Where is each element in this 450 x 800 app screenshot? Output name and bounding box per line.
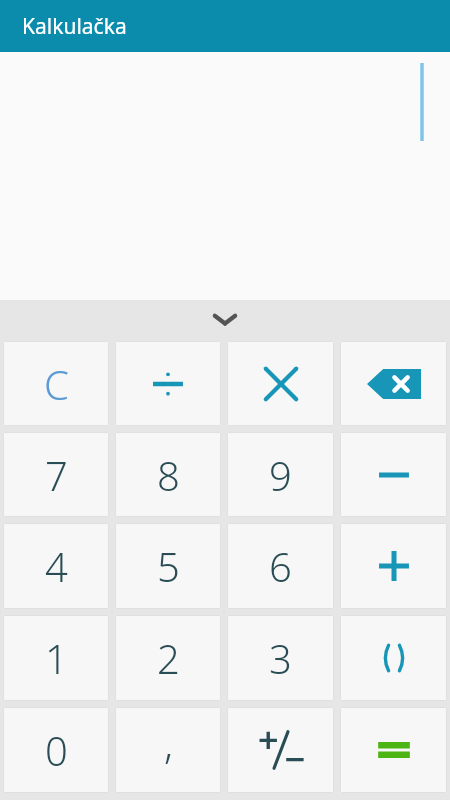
- button[interactable]: 1: [3, 615, 109, 701]
- button[interactable]: 4: [3, 523, 109, 609]
- staticText: 0: [45, 723, 68, 777]
- staticText: 5: [157, 539, 180, 593]
- button[interactable]: 7: [3, 432, 109, 517]
- button[interactable]: 9: [227, 432, 334, 517]
- button[interactable]: 5: [115, 523, 221, 609]
- button[interactable]: Divide: [115, 341, 221, 426]
- staticText: Kalkulačka: [22, 12, 127, 41]
- button[interactable]: Backspace: [340, 341, 447, 426]
- staticText: 6: [269, 539, 292, 593]
- staticText: 8: [157, 448, 180, 502]
- staticText: 4: [45, 539, 68, 593]
- staticText: C: [44, 357, 69, 411]
- button[interactable]: Multiply: [227, 341, 334, 426]
- button[interactable]: 0: [3, 707, 109, 793]
- staticText: 9: [269, 448, 292, 502]
- button[interactable]: Minus: [340, 432, 447, 517]
- staticText: 2: [157, 631, 180, 685]
- staticText: ,: [164, 716, 173, 770]
- button[interactable]: Hide keypad: [0, 300, 450, 338]
- button[interactable]: 2: [115, 615, 221, 701]
- button[interactable]: Clear: [3, 341, 109, 426]
- button[interactable]: 6: [227, 523, 334, 609]
- button[interactable]: Plus: [340, 523, 447, 609]
- staticText: 7: [45, 448, 68, 502]
- button[interactable]: Equals: [340, 707, 447, 793]
- button[interactable]: 3: [227, 615, 334, 701]
- button[interactable]: Plus minus sign: [227, 707, 334, 793]
- button[interactable]: Parentheses: [340, 615, 447, 701]
- staticText: 3: [269, 631, 292, 685]
- button[interactable]: 8: [115, 432, 221, 517]
- staticText: 1: [45, 631, 68, 685]
- button[interactable]: Decimal separator: [115, 707, 221, 793]
